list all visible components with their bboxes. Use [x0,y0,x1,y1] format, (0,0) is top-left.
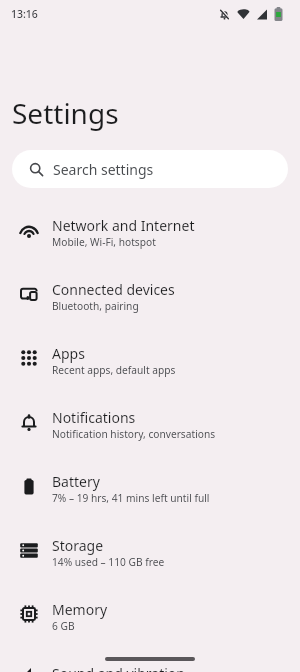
button[interactable]: Network and Internet [0,198,300,262]
staticText: Sound and vibration [52,664,185,672]
button[interactable]: Sound and vibration [0,646,300,672]
staticText: Settings [12,94,119,132]
staticText: 13:16 [11,7,38,21]
staticText: Recent apps, default apps [52,363,176,377]
staticText: Bluetooth, pairing [52,299,139,313]
staticText: Notification history, conversations [52,427,216,441]
staticText: Storage [52,536,104,555]
button[interactable]: Connected devices [0,262,300,326]
button[interactable]: Battery [0,454,300,518]
button[interactable]: Notifications [0,390,300,454]
staticText: Search settings [53,160,154,179]
staticText: Battery [52,472,100,491]
button[interactable]: Apps [0,326,300,390]
staticText: 7% – 19 hrs, 41 mins left until full [52,491,210,505]
staticText: 14% used – 110 GB free [52,555,165,569]
button[interactable]: Memory [0,582,300,646]
button[interactable]: Search settings [12,150,288,188]
staticText: 6 GB [52,619,75,633]
button[interactable]: Storage [0,518,300,582]
staticText: Connected devices [52,280,175,299]
staticText: Apps [52,344,85,363]
staticText: Notifications [52,408,136,427]
staticText: Network and Internet [52,216,195,235]
staticText: Memory [52,600,108,619]
staticText: Mobile, Wi-Fi, hotspot [52,235,156,249]
